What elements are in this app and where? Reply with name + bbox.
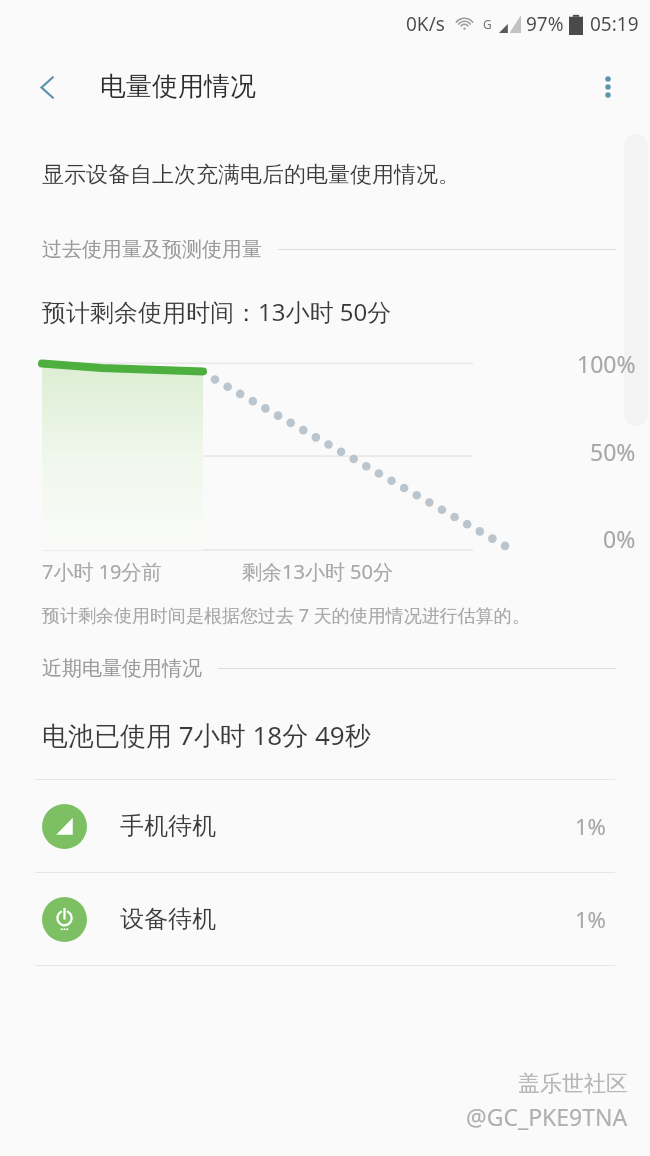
staticText: 1%: [575, 904, 606, 934]
staticText: 50%: [590, 436, 636, 467]
staticText: 预计剩余使用时间：13小时 50分: [42, 295, 392, 328]
staticText: 近期电量使用情况: [42, 656, 202, 681]
staticText: 0%: [603, 523, 636, 554]
staticText: 0K/s: [406, 11, 445, 37]
staticText: 显示设备自上次充满电后的电量使用情况。: [42, 161, 460, 189]
staticText: 7小时 19分前: [42, 558, 162, 585]
staticText: 盖乐世社区: [518, 1070, 628, 1098]
button[interactable]: More options: [580, 59, 636, 115]
button[interactable]: 手机待机: [0, 780, 650, 872]
staticText: 手机待机: [120, 811, 216, 841]
staticText: @GC_PKE9TNA: [466, 1101, 628, 1132]
staticText: G: [483, 16, 492, 32]
staticText: 1%: [575, 811, 606, 841]
staticText: 100%: [577, 348, 636, 379]
staticText: 05:19: [590, 11, 639, 37]
staticText: 电量使用情况: [100, 70, 256, 103]
button[interactable]: Back: [18, 58, 76, 116]
button[interactable]: 设备待机: [0, 873, 650, 965]
staticText: 97%: [526, 11, 564, 37]
staticText: 剩余13小时 50分: [242, 558, 393, 585]
staticText: 过去使用量及预测使用量: [42, 237, 262, 262]
staticText: 设备待机: [120, 904, 216, 934]
staticText: 预计剩余使用时间是根据您过去 7 天的使用情况进行估算的。: [42, 603, 530, 628]
staticText: 电池已使用 7小时 18分 49秒: [42, 717, 371, 753]
